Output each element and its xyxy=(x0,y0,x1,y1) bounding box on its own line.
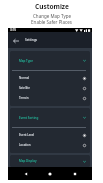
button[interactable]: Map Display xyxy=(10,155,90,167)
button[interactable]: Event Level xyxy=(10,130,90,140)
button[interactable]: Normal xyxy=(10,73,90,83)
staticText: Location xyxy=(19,143,31,147)
button[interactable]: Back xyxy=(9,34,22,47)
button[interactable]: Home xyxy=(43,167,57,180)
staticText: Event Level xyxy=(19,133,35,137)
staticText: Settings xyxy=(25,38,38,42)
staticText: Customize xyxy=(35,2,69,11)
button[interactable]: Recents xyxy=(68,167,82,180)
staticText: Map Display xyxy=(19,159,37,163)
button[interactable]: Event Sorting xyxy=(10,108,90,127)
staticText: Terrain xyxy=(19,96,29,100)
staticText: Normal xyxy=(19,76,30,80)
staticText: Event Sorting xyxy=(19,116,39,120)
button[interactable]: Back xyxy=(19,167,33,180)
staticText: Enable Safer Places xyxy=(31,19,72,25)
staticText: Change Map Type xyxy=(33,13,71,19)
button[interactable]: Terrain xyxy=(10,93,90,103)
staticText: Satellite xyxy=(19,86,30,90)
button[interactable]: Location xyxy=(10,140,90,150)
staticText: Map Type xyxy=(19,59,33,63)
button[interactable]: Satellite xyxy=(10,83,90,93)
staticText: 3:15 xyxy=(10,28,16,32)
button[interactable]: Map Type xyxy=(10,51,90,70)
